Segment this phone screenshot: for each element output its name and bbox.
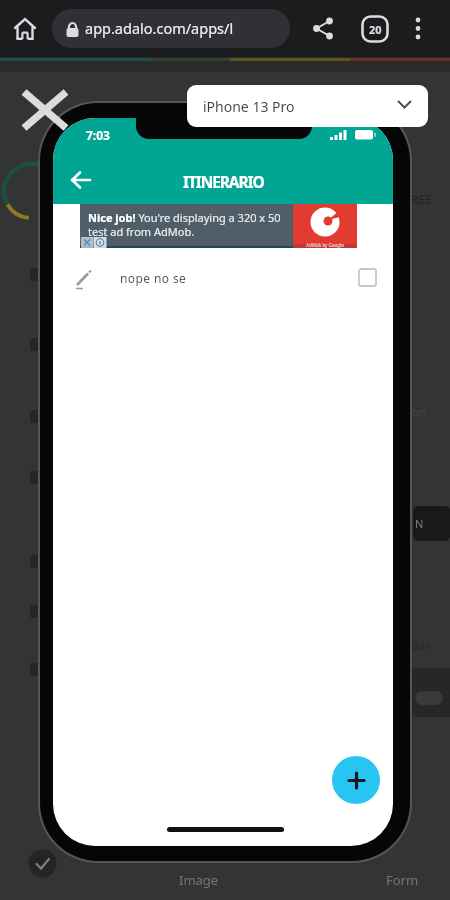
button[interactable]: nope no se (53, 262, 393, 302)
staticText: Form (386, 871, 419, 889)
staticText: 20 (369, 22, 382, 37)
button[interactable]: iPhone 13 Pro (187, 85, 428, 127)
staticText: test ad from AdMob. (88, 224, 195, 239)
staticText: app.adalo.com/apps/l (85, 18, 234, 38)
button[interactable]: Nice job! You're displaying a 320 x 50 (80, 204, 357, 248)
staticText: Nice job! You're displaying a 320 x 50 (88, 210, 281, 225)
staticText: Bar (411, 637, 431, 653)
button[interactable] (61, 162, 101, 198)
button[interactable] (12, 16, 38, 42)
staticText: ITINERARIO (183, 171, 264, 192)
button[interactable] (18, 86, 72, 134)
staticText: REE (411, 191, 432, 207)
staticText: Image (179, 871, 219, 889)
button[interactable]: app.adalo.com/apps/l (52, 9, 290, 48)
staticText: 7:03 (86, 127, 110, 143)
button[interactable] (406, 17, 430, 41)
button[interactable] (332, 756, 380, 804)
staticText: AdMob by Google (306, 242, 344, 248)
staticText: nope no se (120, 270, 187, 286)
staticText: N (415, 516, 424, 531)
button[interactable] (358, 268, 377, 287)
staticText: iPhone 13 Pro (203, 97, 295, 116)
button[interactable]: 20 (361, 15, 389, 43)
button[interactable] (312, 17, 335, 41)
staticText: on (412, 404, 426, 419)
